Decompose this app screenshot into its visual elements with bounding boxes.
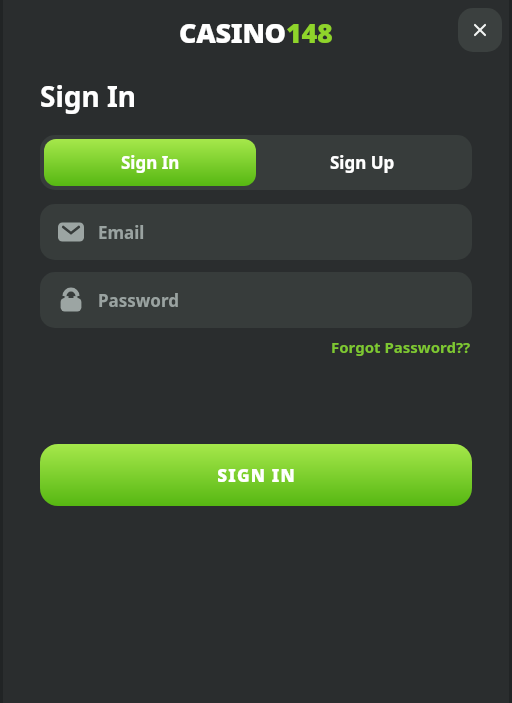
button[interactable]: Sign In — [44, 139, 256, 186]
staticText: Email — [98, 221, 145, 244]
staticText: CASINO — [179, 14, 286, 51]
button[interactable]: SIGN IN — [40, 444, 472, 506]
staticText: Sign In — [121, 151, 180, 174]
button[interactable]: Password — [40, 272, 472, 328]
staticText: 148 — [286, 14, 333, 51]
button[interactable]: Close — [458, 8, 502, 52]
staticText: Password — [98, 289, 179, 312]
button[interactable]: Email — [40, 204, 472, 260]
button[interactable]: Sign Up — [256, 139, 468, 186]
staticText: Sign In — [40, 77, 137, 115]
button[interactable]: Forgot Password?? — [330, 335, 472, 359]
staticText: SIGN IN — [217, 464, 296, 487]
staticText: Sign Up — [330, 151, 395, 174]
